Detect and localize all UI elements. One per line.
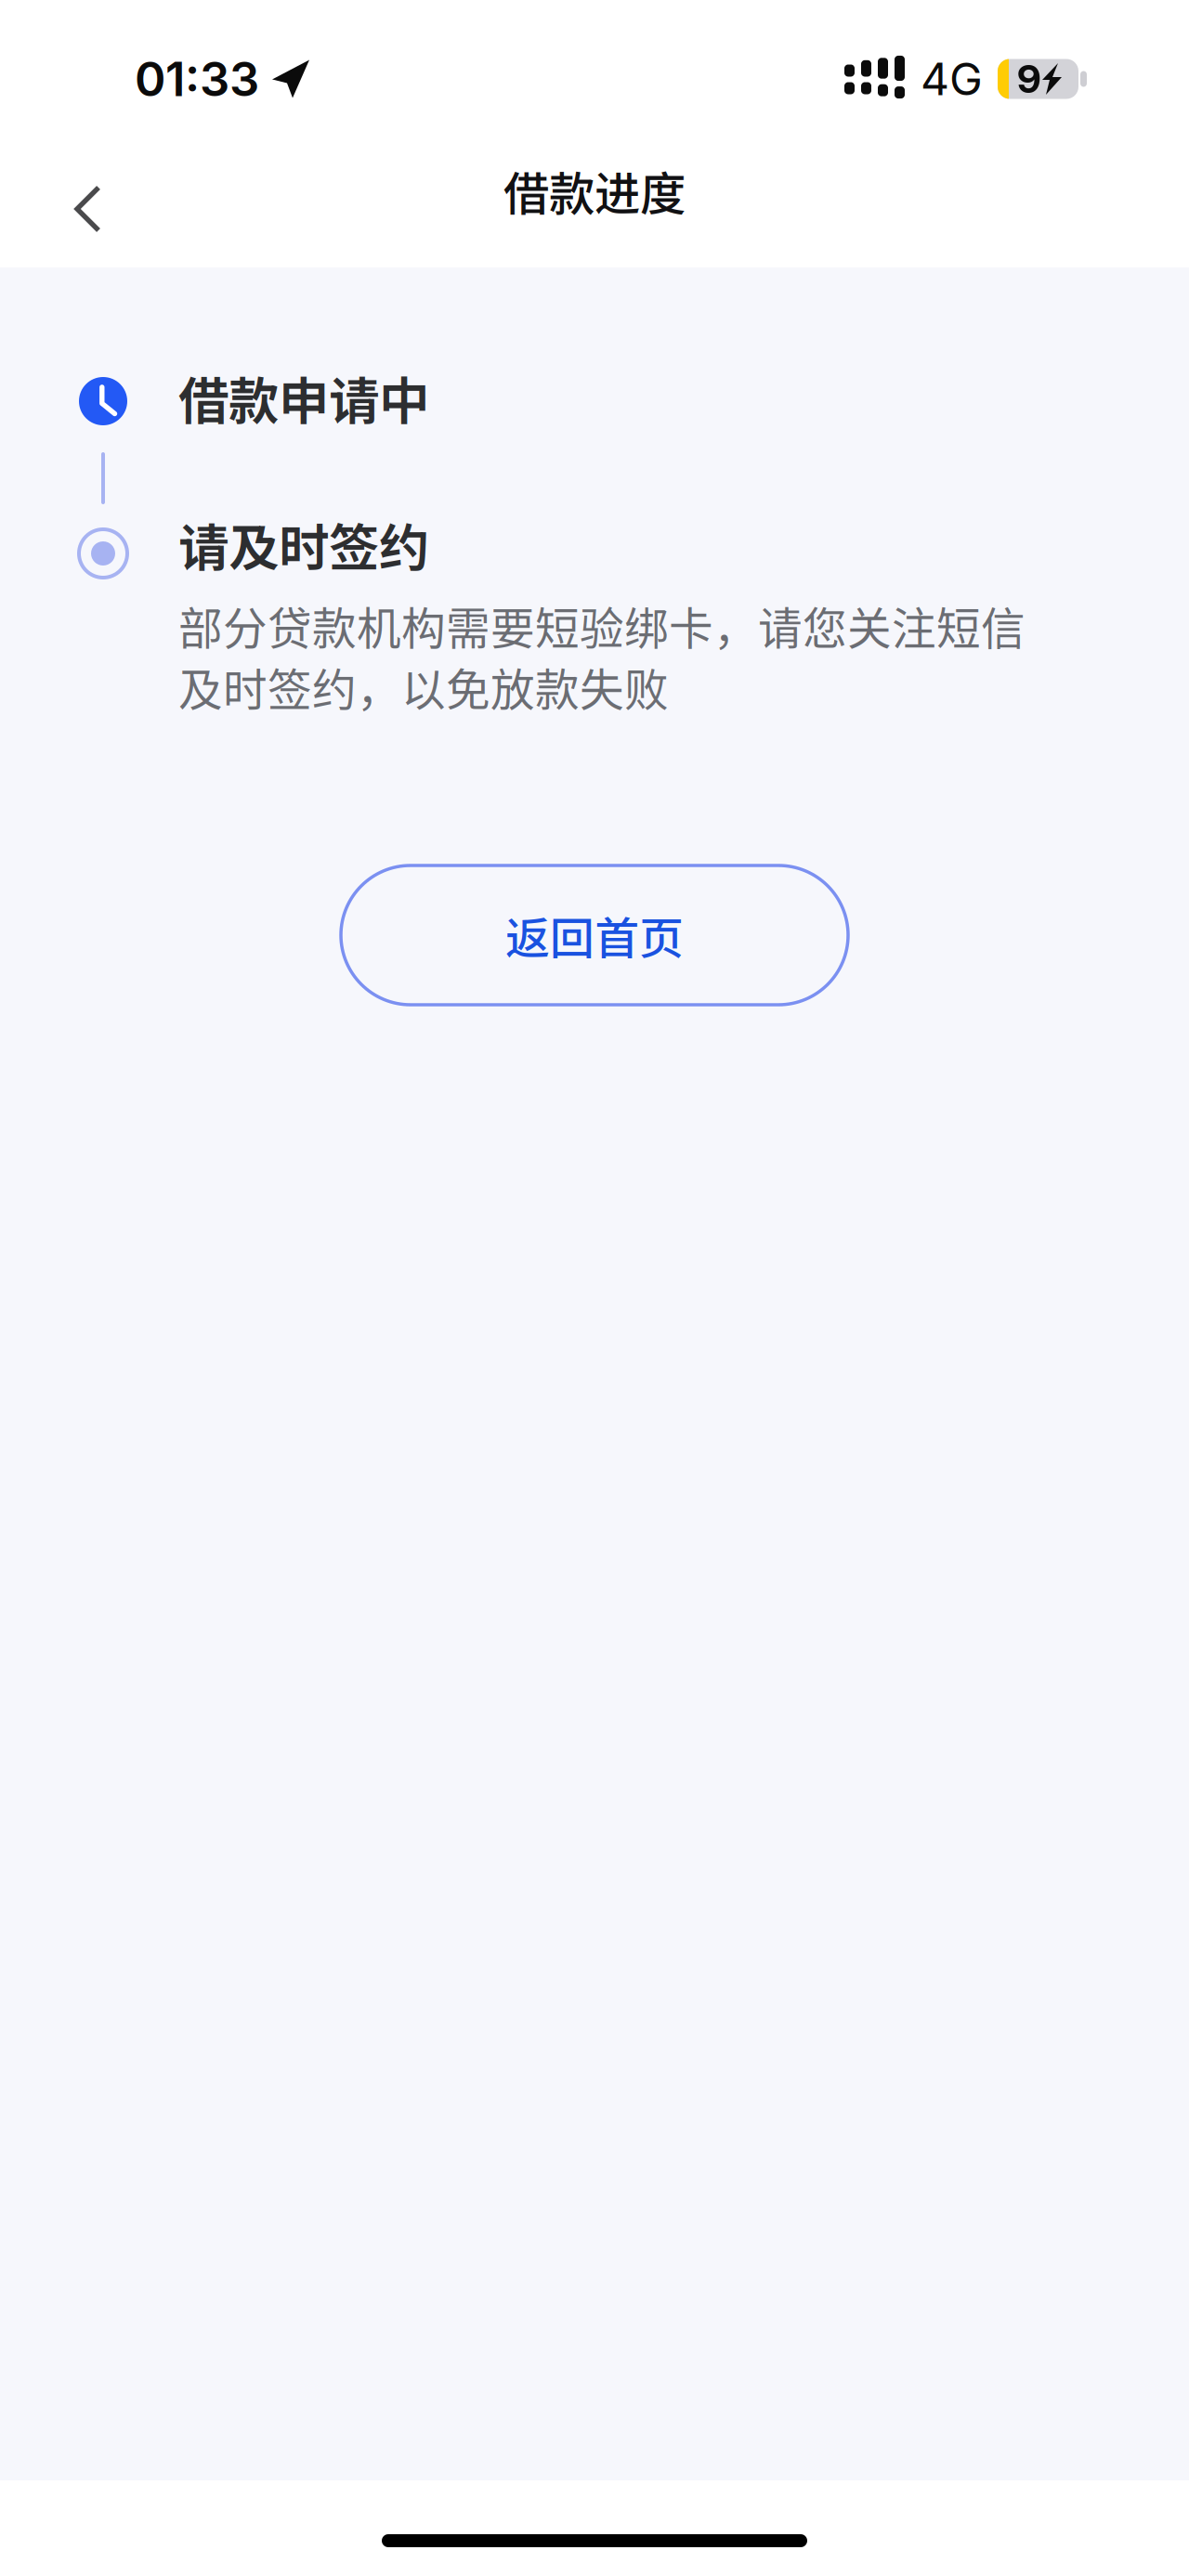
staticText: 部分贷款机构需要短验绑卡，请您关注短信及时签约，以免放款失败 xyxy=(178,593,1026,719)
button[interactable]: 返回 xyxy=(0,161,144,265)
staticText: 请及时签约 xyxy=(178,508,429,581)
staticText: 01:33 xyxy=(135,50,259,107)
staticText: 9 xyxy=(1017,56,1041,102)
staticText: 借款申请中 xyxy=(178,361,429,434)
staticText: 4G xyxy=(921,52,983,106)
staticText: 返回首页 xyxy=(505,903,684,967)
staticText: 借款进度 xyxy=(503,157,686,224)
button[interactable]: 返回首页 xyxy=(341,865,848,1005)
